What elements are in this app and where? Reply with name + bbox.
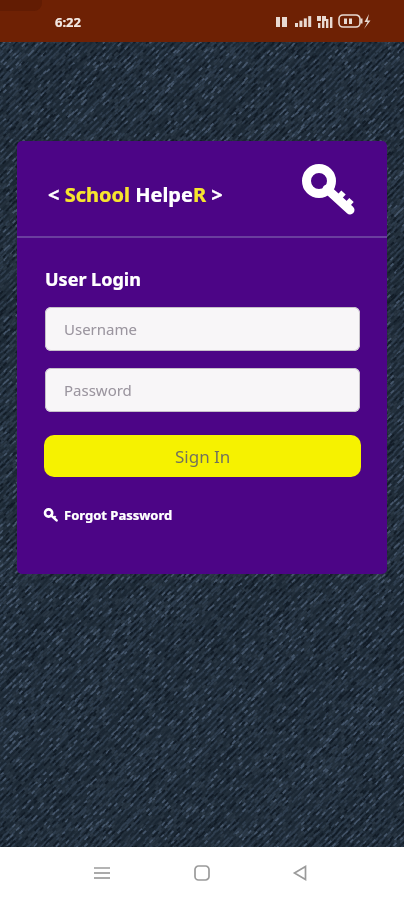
button[interactable]: Password — [45, 368, 360, 412]
staticText: Username — [64, 319, 137, 339]
staticText: Forgot Password — [64, 506, 173, 524]
button[interactable]: Forgot Password — [44, 506, 173, 524]
staticText: Password — [64, 380, 132, 400]
button[interactable] — [188, 859, 216, 887]
button[interactable]: Username — [45, 307, 360, 351]
button[interactable]: Sign In — [44, 435, 361, 477]
button[interactable] — [88, 859, 116, 887]
staticText: Sign In — [175, 445, 231, 468]
button[interactable] — [302, 163, 358, 219]
staticText: < School HelpeR > — [48, 181, 223, 208]
staticText: User Login — [45, 267, 141, 292]
button[interactable] — [286, 859, 314, 887]
staticText: 6:22 — [55, 13, 81, 31]
